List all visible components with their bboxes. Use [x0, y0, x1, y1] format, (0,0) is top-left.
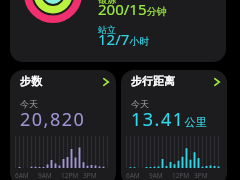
staticText: 今天: [20, 98, 38, 109]
staticText: 20,820: [20, 107, 86, 132]
staticText: 锻炼: [98, 0, 116, 5]
staticText: 6AM: [126, 171, 140, 180]
staticText: 9AM: [38, 171, 52, 180]
button[interactable]: 活动: [10, 0, 226, 62]
staticText: 3PM: [194, 171, 208, 180]
staticText: 13.41公里: [131, 107, 207, 132]
staticText: 3PM: [83, 171, 97, 180]
staticText: 今天: [131, 98, 149, 109]
staticText: 12PM: [61, 171, 79, 180]
staticText: 12PM: [172, 171, 190, 180]
staticText: 步行距离: [131, 74, 175, 88]
staticText: 12/7小时: [98, 29, 150, 49]
button[interactable]: 步数: [10, 70, 116, 180]
staticText: 6AM: [15, 171, 29, 180]
staticText: 步数: [20, 74, 42, 88]
button[interactable]: 步行距离: [121, 70, 227, 180]
staticText: 9AM: [149, 171, 163, 180]
button[interactable]: 查看详情: [102, 76, 110, 88]
button[interactable]: 查看详情: [213, 76, 221, 88]
staticText: 200/15分钟: [98, 0, 167, 19]
staticText: 站立: [98, 24, 116, 35]
